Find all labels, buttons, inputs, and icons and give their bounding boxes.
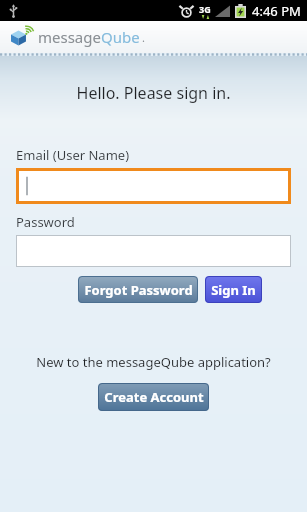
staticText: Hello. Please sign in.: [0, 82, 307, 104]
staticText: Forgot Password: [84, 281, 193, 299]
staticText: 4:46 PM: [252, 2, 301, 20]
button[interactable]: Email (User Name) field: [16, 168, 291, 204]
staticText: Password: [16, 213, 75, 231]
button[interactable]: Password field: [16, 235, 291, 267]
staticText: 3G: [199, 3, 211, 15]
staticText: Email (User Name): [16, 146, 130, 164]
staticText: message: [38, 27, 101, 47]
staticText: Sign In: [211, 281, 256, 299]
staticText: New to the messageQube application?: [0, 353, 307, 371]
staticText: Create Account: [104, 388, 204, 406]
button[interactable]: Sign In: [205, 276, 262, 303]
staticText: .: [142, 30, 145, 45]
button[interactable]: Forgot Password: [78, 276, 198, 303]
staticText: Qube: [101, 27, 140, 47]
button[interactable]: Create Account: [98, 383, 209, 411]
